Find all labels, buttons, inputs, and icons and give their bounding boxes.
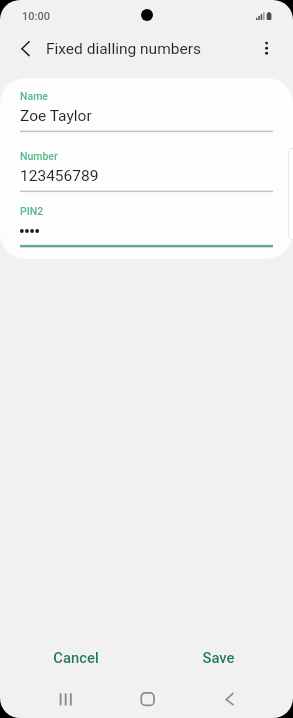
button[interactable]: Save — [165, 640, 272, 674]
staticText: 10:00 — [22, 10, 50, 23]
button[interactable]: PIN2 — [0, 199, 293, 251]
staticText: Number — [20, 150, 58, 162]
button[interactable]: Cancel — [22, 640, 129, 674]
button[interactable]: Number — [0, 144, 293, 196]
button[interactable]: Recent apps — [47, 686, 85, 714]
staticText: 123456789 — [20, 167, 99, 185]
staticText: PIN2 — [20, 205, 44, 217]
button[interactable]: Name — [0, 84, 293, 136]
staticText: Name — [20, 90, 48, 102]
button[interactable]: Navigate up — [5, 30, 41, 66]
staticText: Zoe Taylor — [20, 107, 92, 125]
button[interactable]: More options — [249, 30, 285, 66]
button[interactable]: Back — [211, 686, 249, 714]
staticText: Save — [202, 649, 235, 666]
staticText: Fixed dialling numbers — [46, 40, 201, 58]
button[interactable]: Home — [128, 686, 166, 714]
staticText: Cancel — [53, 649, 99, 666]
